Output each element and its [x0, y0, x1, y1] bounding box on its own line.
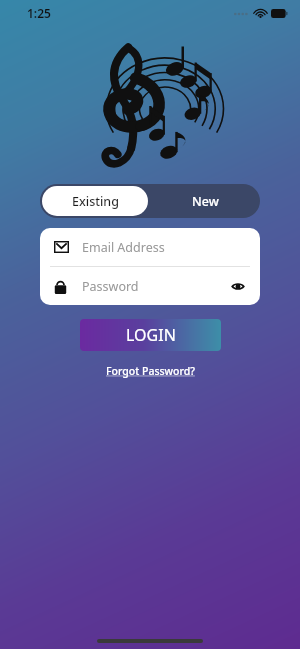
staticText: LOGIN — [126, 324, 176, 346]
button[interactable]: New — [150, 184, 260, 218]
button[interactable]: Password — [40, 267, 260, 305]
staticText: New — [192, 193, 219, 210]
button[interactable]: Show password — [228, 276, 248, 296]
staticText: 1:25 — [27, 5, 51, 21]
button[interactable]: Email Address — [40, 228, 260, 266]
button[interactable]: Forgot Password? — [98, 361, 203, 381]
button[interactable]: LOGIN — [80, 319, 221, 351]
staticText: Password — [82, 278, 139, 295]
staticText: Existing — [72, 193, 119, 210]
staticText: Forgot Password? — [106, 364, 195, 378]
staticText: Email Address — [82, 239, 165, 256]
button[interactable]: Existing — [42, 186, 148, 216]
